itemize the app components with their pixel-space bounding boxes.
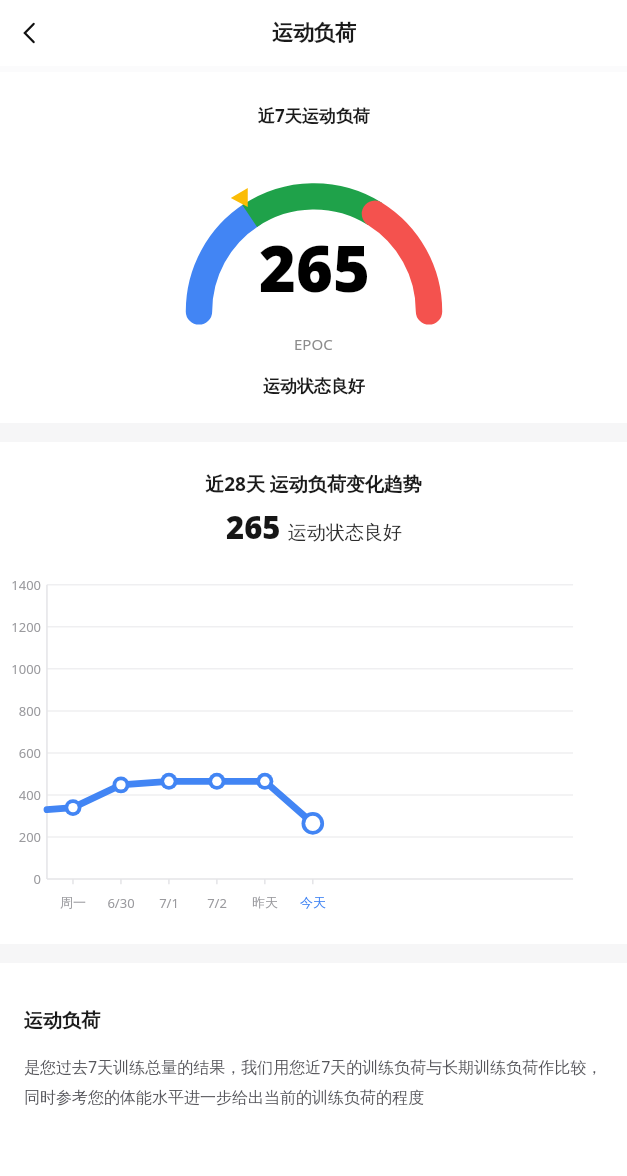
staticText: 600	[0, 744, 41, 762]
button[interactable]: Back	[6, 9, 54, 57]
staticText: 800	[0, 702, 41, 720]
staticText: EPOC	[294, 334, 333, 354]
staticText: 265	[259, 225, 370, 311]
staticText: 1200	[0, 618, 41, 636]
staticText: 6/30	[97, 894, 145, 912]
staticText: 400	[0, 786, 41, 804]
staticText: 265	[226, 506, 281, 548]
staticText: 7/1	[145, 894, 193, 912]
staticText: 是您过去7天训练总量的结果，我们用您近7天的训练负荷与长期训练负荷作比较，同时参…	[24, 1056, 603, 1108]
staticText: 昨天	[241, 894, 289, 910]
staticText: 今天	[289, 894, 337, 910]
staticText: 200	[0, 828, 41, 846]
staticText: 运动状态良好	[288, 521, 402, 545]
staticText: 运动负荷	[24, 1009, 100, 1033]
staticText: 1400	[0, 576, 41, 594]
staticText: 周一	[49, 894, 97, 910]
staticText: 近7天运动负荷	[258, 104, 370, 127]
staticText: 运动状态良好	[263, 376, 365, 397]
staticText: 近28天 运动负荷变化趋势	[0, 471, 627, 497]
staticText: 1000	[0, 660, 41, 678]
staticText: 0	[0, 870, 41, 888]
staticText: 7/2	[193, 894, 241, 912]
staticText: 运动负荷	[272, 20, 356, 46]
